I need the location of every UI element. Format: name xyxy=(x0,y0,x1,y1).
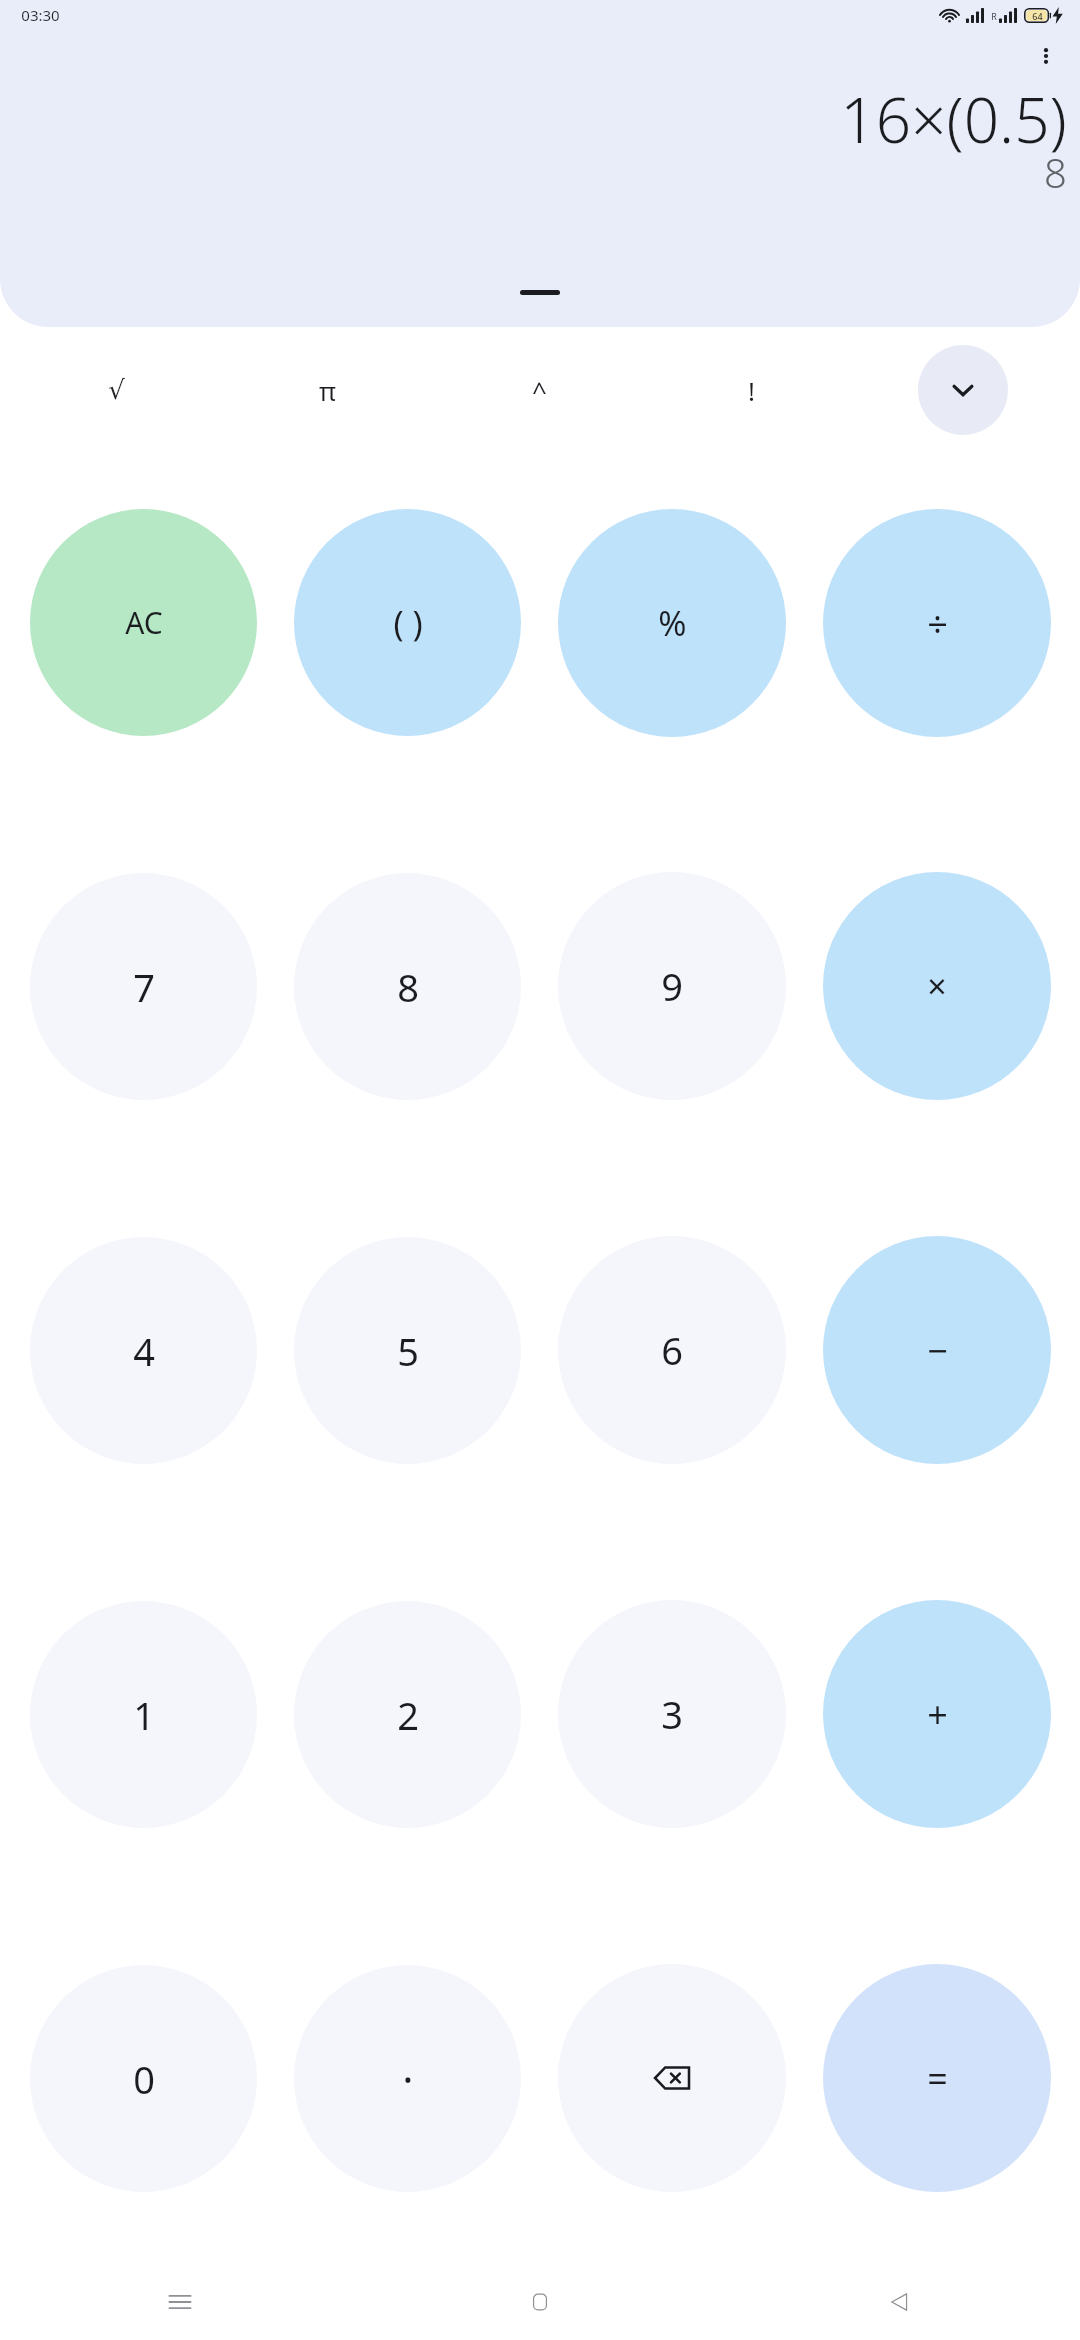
staticText: ( ) xyxy=(393,600,423,646)
button[interactable]: Collapse functions xyxy=(918,345,1008,435)
button[interactable]: 0 xyxy=(30,1965,257,2192)
staticText: 3 xyxy=(661,1688,683,1740)
staticText: 2 xyxy=(397,1689,419,1741)
staticText: 1 xyxy=(133,1689,155,1741)
button[interactable]: 3 xyxy=(558,1600,786,1828)
button[interactable]: √ xyxy=(11,345,222,435)
staticText: 8 xyxy=(1044,145,1067,199)
button[interactable]: × xyxy=(823,872,1051,1100)
staticText: ^ xyxy=(532,373,547,408)
button[interactable]: − xyxy=(823,1236,1051,1464)
button[interactable]: π xyxy=(222,345,433,435)
staticText: · xyxy=(402,2050,414,2107)
staticText: 9 xyxy=(661,960,683,1012)
button[interactable]: 2 xyxy=(294,1601,521,1828)
staticText: = xyxy=(927,2054,948,2103)
staticText: 5 xyxy=(397,1325,419,1377)
button[interactable]: Recents xyxy=(0,2264,360,2340)
staticText: ! xyxy=(748,373,755,408)
button[interactable]: + xyxy=(823,1600,1051,1828)
button[interactable]: Back xyxy=(720,2264,1080,2340)
button[interactable]: 5 xyxy=(294,1237,521,1464)
button[interactable]: Home xyxy=(360,2264,720,2340)
button[interactable]: 6 xyxy=(558,1236,786,1464)
button[interactable]: ! xyxy=(645,345,857,435)
button[interactable]: 8 xyxy=(294,873,521,1100)
staticText: 03:30 xyxy=(21,5,60,25)
button[interactable]: ^ xyxy=(433,345,645,435)
staticText: 4 xyxy=(133,1325,155,1377)
button[interactable]: Delete xyxy=(558,1964,786,2192)
staticText: ÷ xyxy=(927,599,948,648)
staticText: 0 xyxy=(133,2053,155,2105)
button[interactable]: AC xyxy=(30,509,257,736)
staticText: √ xyxy=(108,375,125,405)
staticText: 8 xyxy=(397,961,419,1013)
staticText: 16×(0.5) xyxy=(840,77,1067,161)
staticText: 7 xyxy=(133,961,155,1013)
staticText: AC xyxy=(125,602,163,643)
staticText: + xyxy=(927,1690,948,1739)
button[interactable]: 4 xyxy=(30,1237,257,1464)
button[interactable]: 7 xyxy=(30,873,257,1100)
button[interactable]: ÷ xyxy=(823,509,1051,737)
button[interactable]: = xyxy=(823,1964,1051,2192)
button[interactable]: · xyxy=(294,1965,521,2192)
button[interactable]: 9 xyxy=(558,872,786,1100)
staticText: × xyxy=(927,963,947,1009)
button[interactable]: ( ) xyxy=(294,509,521,736)
button[interactable]: 1 xyxy=(30,1601,257,1828)
staticText: 6 xyxy=(661,1324,683,1376)
staticText: − xyxy=(927,1326,948,1375)
staticText: π xyxy=(319,373,336,408)
staticText: R xyxy=(991,10,997,22)
button[interactable]: % xyxy=(558,509,786,737)
button[interactable]: More options xyxy=(1022,32,1070,80)
staticText: 64 xyxy=(1032,10,1043,22)
staticText: % xyxy=(658,600,687,646)
